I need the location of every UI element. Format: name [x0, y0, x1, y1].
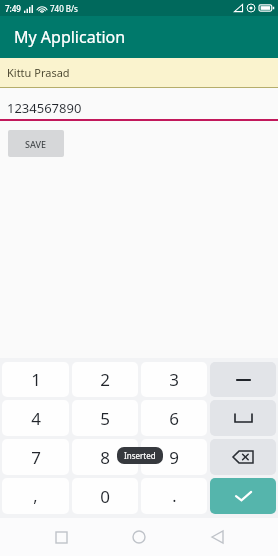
button[interactable]: 8 [72, 439, 138, 475]
button[interactable]: 9 [141, 439, 207, 475]
button[interactable]: 3 [141, 362, 207, 397]
button[interactable]: 4 [2, 400, 69, 436]
button[interactable]: Space [210, 400, 276, 436]
button[interactable]: Kittu Prasad [0, 58, 278, 88]
staticText: 1234567890 [7, 99, 82, 117]
staticText: Kittu Prasad [7, 65, 70, 80]
staticText: 1 [31, 368, 41, 391]
button[interactable]: , [2, 478, 69, 514]
button[interactable]: 1234567890 [0, 95, 278, 121]
staticText: 3 [169, 368, 179, 391]
staticText: 7:49 [5, 3, 21, 14]
button[interactable]: SAVE [8, 130, 64, 157]
staticText: 6 [169, 407, 179, 430]
staticText: 2 [100, 368, 110, 391]
staticText: 4 [31, 407, 41, 430]
button[interactable]: Enter [210, 478, 276, 514]
button[interactable]: . [141, 478, 207, 514]
staticText: Inserted [124, 450, 156, 461]
button[interactable]: 1 [2, 362, 69, 397]
button[interactable]: 0 [72, 478, 138, 514]
button[interactable]: Minus [210, 362, 276, 397]
button[interactable]: 2 [72, 362, 138, 397]
button[interactable]: 7 [2, 439, 69, 475]
button[interactable]: Recents [44, 520, 78, 554]
staticText: 5 [100, 407, 110, 430]
staticText: 740 B/s [50, 3, 78, 14]
staticText: , [33, 485, 38, 507]
staticText: My Application [14, 26, 126, 48]
button[interactable]: Back [200, 520, 234, 554]
button[interactable]: Home [122, 520, 156, 554]
button[interactable]: Backspace [210, 439, 276, 475]
button[interactable]: 6 [141, 400, 207, 436]
staticText: 9 [169, 446, 179, 469]
staticText: 8 [100, 446, 110, 469]
staticText: . [172, 485, 177, 507]
staticText: 7 [31, 446, 41, 469]
staticText: SAVE [25, 138, 47, 150]
staticText: 0 [100, 485, 110, 508]
button[interactable]: 5 [72, 400, 138, 436]
